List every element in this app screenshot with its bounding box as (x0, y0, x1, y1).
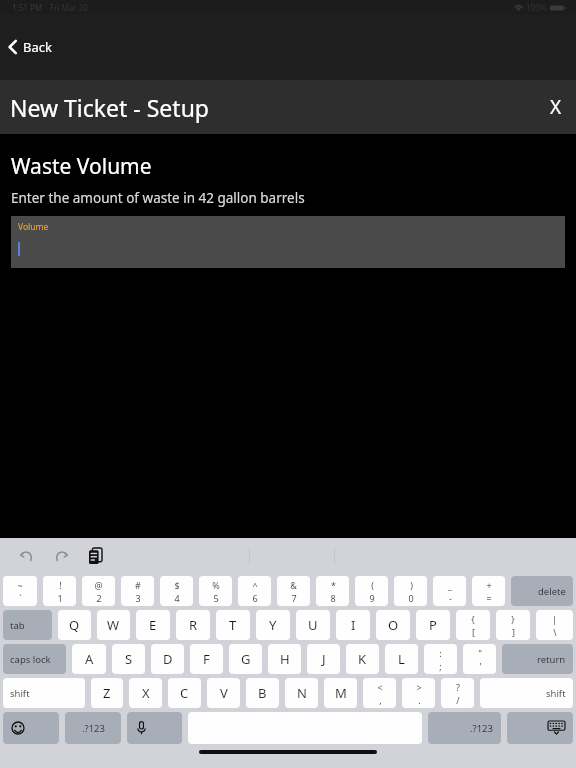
button[interactable]: O (376, 610, 410, 640)
button[interactable]: E (136, 610, 170, 640)
staticText: ? (456, 681, 460, 693)
staticText: M (335, 684, 347, 702)
staticText: * (331, 579, 336, 591)
button[interactable]: > (402, 678, 435, 708)
button[interactable]: ! (43, 576, 76, 606)
button[interactable]: H (268, 644, 301, 674)
button[interactable]: Redo (50, 544, 74, 568)
button[interactable]: I (336, 610, 370, 640)
staticText: | (552, 613, 557, 625)
button[interactable]: Y (256, 610, 290, 640)
button[interactable]: U (296, 610, 330, 640)
button[interactable]: V (207, 678, 240, 708)
button[interactable]: } (496, 610, 530, 640)
staticText: 100% (526, 2, 547, 13)
button[interactable]: shift (3, 678, 85, 708)
staticText: Q (69, 616, 80, 634)
button[interactable]: " (463, 644, 496, 674)
button[interactable]: .?123 (428, 712, 501, 744)
button[interactable]: shift (480, 678, 573, 708)
button[interactable]: : (424, 644, 457, 674)
button[interactable]: Z (91, 678, 123, 708)
staticText: Volume (18, 221, 49, 233)
staticText: L (398, 650, 405, 668)
staticText: P (429, 616, 437, 634)
staticText: tab (10, 619, 25, 632)
staticText: + (486, 579, 492, 591)
staticText: \ (553, 626, 557, 638)
button[interactable]: Volume (11, 216, 565, 268)
button[interactable]: .?123 (65, 712, 121, 744)
button[interactable]: K (346, 644, 379, 674)
staticText: New Ticket - Setup (10, 92, 209, 123)
button[interactable]: T (216, 610, 250, 640)
button[interactable]: Emoji (3, 712, 59, 744)
button[interactable]: < (363, 678, 396, 708)
button[interactable]: L (385, 644, 418, 674)
button[interactable]: J (307, 644, 340, 674)
button[interactable]: ) (394, 576, 427, 606)
button[interactable]: ^ (238, 576, 271, 606)
staticText: X (142, 684, 150, 702)
staticText: . (418, 694, 421, 706)
button[interactable]: Hide keyboard (507, 712, 573, 744)
staticText: O (388, 616, 399, 634)
button[interactable]: X (129, 678, 162, 708)
button[interactable]: Q (58, 610, 91, 640)
staticText: X (550, 94, 562, 120)
staticText: delete (538, 585, 566, 598)
button[interactable]: G (229, 644, 262, 674)
staticText: _ (448, 579, 452, 591)
button[interactable]: Close (536, 84, 576, 130)
button[interactable]: & (277, 576, 310, 606)
button[interactable]: tab (3, 610, 52, 640)
button[interactable]: P (416, 610, 450, 640)
staticText: < (377, 681, 383, 693)
button[interactable]: delete (511, 576, 573, 606)
button[interactable]: S (112, 644, 145, 674)
button[interactable]: M (324, 678, 357, 708)
button[interactable]: ( (355, 576, 388, 606)
button[interactable]: C (168, 678, 201, 708)
staticText: ] (512, 626, 515, 638)
staticText: ^ (252, 579, 258, 591)
button[interactable]: D (151, 644, 184, 674)
button[interactable]: @ (82, 576, 115, 606)
button[interactable]: N (285, 678, 318, 708)
button[interactable]: B (246, 678, 279, 708)
button[interactable]: ~ (3, 576, 37, 606)
button[interactable]: | (536, 610, 573, 640)
button[interactable]: % (199, 576, 232, 606)
staticText: caps lock (10, 653, 51, 666)
button[interactable]: # (121, 576, 154, 606)
button[interactable]: $ (160, 576, 193, 606)
staticText: .?123 (470, 722, 493, 735)
staticText: 8 (330, 592, 336, 604)
button[interactable]: Undo (14, 544, 38, 568)
staticText: 0 (408, 592, 414, 604)
button[interactable]: A (72, 644, 106, 674)
button[interactable]: Back (0, 30, 66, 64)
button[interactable]: Dictation (127, 712, 182, 744)
button[interactable]: caps lock (3, 644, 66, 674)
button[interactable]: Paste (86, 545, 105, 567)
staticText: @ (94, 579, 103, 591)
button[interactable]: return (502, 644, 573, 674)
button[interactable]: + (472, 576, 505, 606)
button[interactable]: { (456, 610, 490, 640)
button[interactable]: F (190, 644, 223, 674)
staticText: I (351, 616, 356, 634)
button[interactable]: ? (441, 678, 474, 708)
button[interactable]: R (176, 610, 210, 640)
staticText: B (258, 684, 267, 702)
button[interactable]: * (316, 576, 349, 606)
staticText: ; (439, 660, 442, 672)
staticText: 9 (369, 592, 375, 604)
staticText: shift (546, 687, 566, 700)
staticText: Y (269, 616, 277, 634)
button[interactable]: _ (433, 576, 466, 606)
staticText: Z (103, 684, 111, 702)
button[interactable]: W (97, 610, 130, 640)
staticText: W (107, 616, 120, 634)
